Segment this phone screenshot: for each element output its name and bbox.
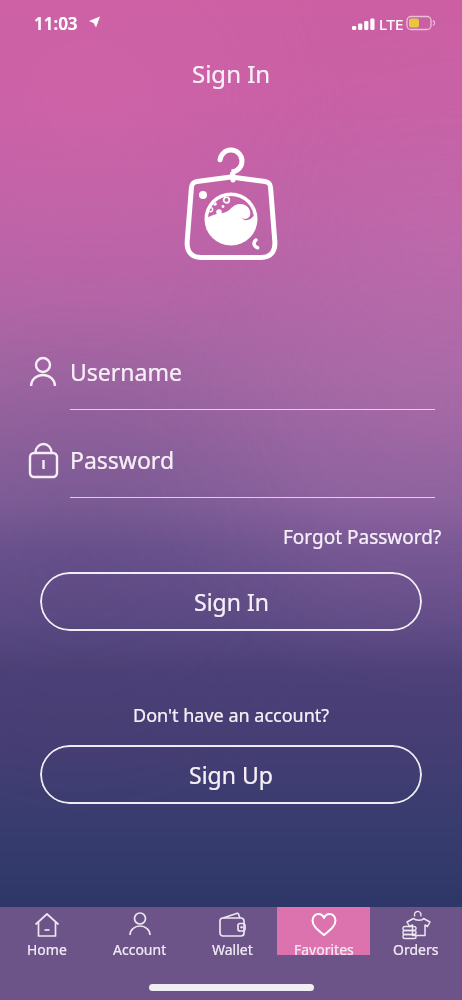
staticText: Sign In [194,586,269,617]
staticText: Username [70,356,182,387]
button[interactable]: Orders [370,907,462,955]
button[interactable]: Wallet [186,907,278,955]
staticText: Sign Up [189,759,273,790]
button[interactable]: Sign Up [40,745,422,804]
staticText: Home [27,940,67,955]
button[interactable]: Forgot Password? [280,520,445,554]
button[interactable]: Account [93,907,186,955]
staticText: Orders [393,940,439,955]
staticText: Favorites [294,940,354,955]
staticText: Don't have an account? [133,703,330,728]
staticText: Wallet [212,940,253,955]
staticText: Forgot Password? [283,524,442,550]
staticText: Account [113,940,167,955]
button[interactable]: Sign In [40,572,422,631]
staticText: Password [70,444,175,475]
button[interactable]: Home [0,907,93,955]
staticText: LTE [379,14,404,34]
button[interactable]: Favorites [278,907,370,955]
button[interactable]: Password [24,436,442,500]
staticText: 11:03 [34,12,78,35]
staticText: Sign In [192,57,271,90]
button[interactable]: Username [24,348,442,412]
